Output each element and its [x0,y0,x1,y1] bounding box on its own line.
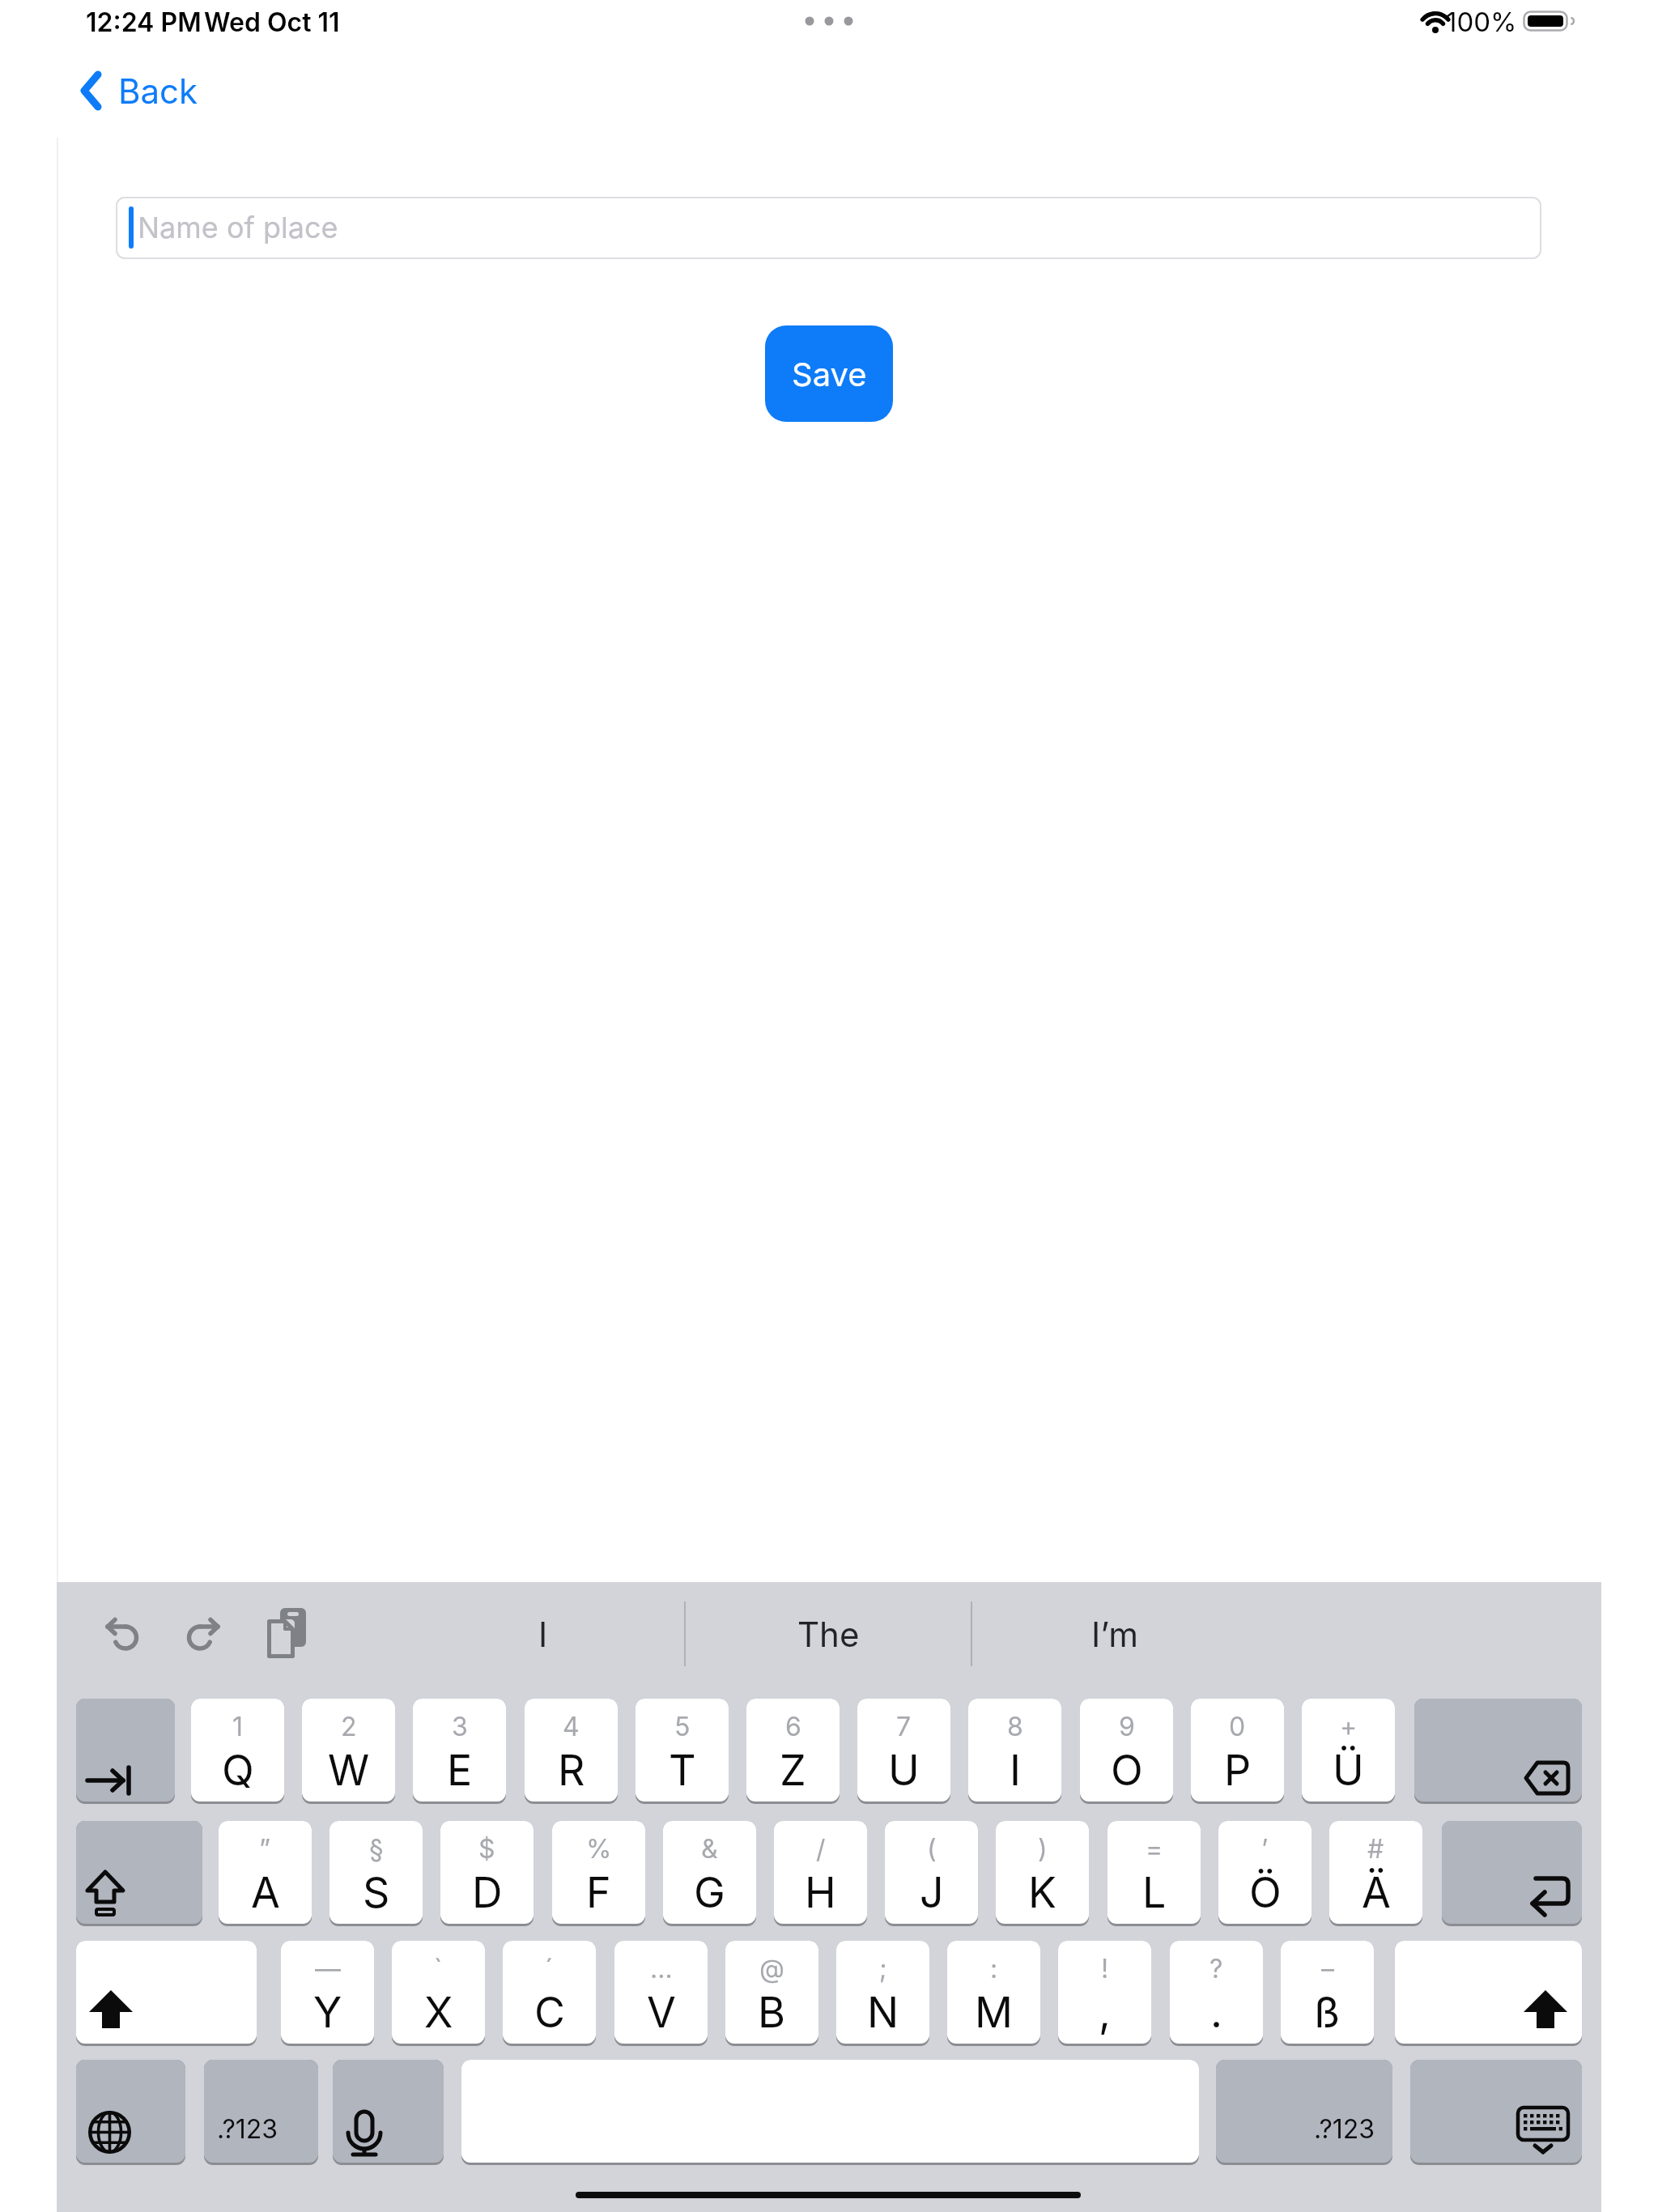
button[interactable] [1414,1699,1582,1802]
button[interactable]: $ [440,1821,534,1924]
staticText: I [1010,1745,1021,1796]
staticText: 7 [896,1711,912,1742]
staticText: J [920,1867,944,1918]
button[interactable]: ! [1058,1941,1151,2044]
staticText: U [888,1745,920,1796]
button[interactable]: § [329,1821,423,1924]
button[interactable]: 2 [302,1699,395,1802]
staticText: Ü [1333,1745,1364,1796]
staticText: § [369,1833,384,1865]
staticText: + [1340,1711,1358,1742]
button[interactable]: ´ [503,1941,596,2044]
button[interactable]: % [552,1821,645,1924]
button[interactable] [76,2060,185,2163]
button[interactable] [76,1941,257,2044]
staticText: 100% [1446,6,1517,38]
staticText: 2 [341,1711,357,1742]
button[interactable]: Save [765,325,893,422]
staticText: I’m [1091,1614,1139,1655]
staticText: : [990,1953,998,1984]
button[interactable]: – [1281,1941,1374,2044]
staticText: Wed Oct 11 [204,6,340,38]
button[interactable]: : [947,1941,1040,2044]
button[interactable]: 8 [968,1699,1061,1802]
staticText: 12:24 PM [86,6,202,38]
staticText: T [669,1745,696,1796]
button[interactable]: ` [392,1941,485,2044]
staticText: 5 [674,1711,691,1742]
staticText: – [1321,1953,1334,1984]
staticText: — [315,1953,341,1984]
button[interactable]: ) [996,1821,1089,1924]
button[interactable]: 1 [191,1699,284,1802]
staticText: ´ [545,1953,554,1984]
staticText: O [1111,1745,1143,1796]
button[interactable]: 4 [525,1699,618,1802]
button[interactable]: ? [1170,1941,1263,2044]
button[interactable] [73,65,202,117]
staticText: Save [792,355,867,393]
staticText: = [1146,1833,1163,1865]
staticText: N [867,1987,899,2038]
staticText: 8 [1007,1711,1023,1742]
button[interactable]: & [663,1821,756,1924]
button[interactable] [1410,2060,1582,2163]
staticText: Z [780,1745,806,1796]
staticText: 4 [563,1711,580,1742]
staticText: ” [259,1833,271,1865]
button[interactable]: ; [836,1941,929,2044]
staticText: A [251,1867,280,1918]
staticText: R [558,1745,585,1796]
staticText: Q [222,1745,254,1796]
staticText: E [447,1745,473,1796]
button[interactable] [333,2060,444,2163]
staticText: C [534,1987,565,2038]
staticText: S [363,1867,390,1918]
button[interactable]: ” [219,1821,312,1924]
staticText: 3 [452,1711,468,1742]
staticText: ’ [1261,1833,1269,1865]
button[interactable]: ( [885,1821,978,1924]
button[interactable]: 9 [1080,1699,1173,1802]
staticText: … [650,1953,673,1984]
staticText: # [1367,1833,1384,1865]
button[interactable]: .?123 [204,2060,318,2163]
button[interactable] [1395,1941,1582,2044]
staticText: I [538,1614,548,1655]
button[interactable] [76,1821,202,1924]
staticText: . [1210,1987,1222,2038]
button[interactable]: / [774,1821,867,1924]
staticText: V [647,1987,676,2038]
button[interactable]: .?123 [1216,2060,1392,2163]
staticText: 1 [232,1711,244,1742]
button[interactable]: # [1329,1821,1422,1924]
button[interactable]: 5 [636,1699,729,1802]
button[interactable]: + [1302,1699,1395,1802]
staticText: L [1142,1867,1167,1918]
staticText: Back [118,70,198,112]
button[interactable]: … [614,1941,708,2044]
button[interactable]: 7 [857,1699,950,1802]
staticText: K [1028,1867,1056,1918]
button[interactable]: — [281,1941,374,2044]
button[interactable] [1442,1821,1582,1924]
button[interactable]: ’ [1218,1821,1312,1924]
staticText: Ö [1249,1867,1282,1918]
staticText: ? [1209,1953,1223,1984]
button[interactable] [76,1699,175,1802]
staticText: & [701,1833,718,1865]
staticText: ) [1038,1833,1048,1865]
button[interactable]: = [1107,1821,1201,1924]
button[interactable] [116,197,1541,259]
button[interactable]: 3 [413,1699,506,1802]
staticText: ! [1101,1953,1109,1984]
button[interactable]: 6 [746,1699,840,1802]
staticText: 9 [1119,1711,1135,1742]
staticText: @ [759,1953,784,1984]
staticText: M [975,1987,1013,2038]
staticText: .?123 [1314,2113,1375,2145]
staticText: W [328,1745,370,1796]
button[interactable]: 0 [1191,1699,1284,1802]
button[interactable]: @ [725,1941,818,2044]
